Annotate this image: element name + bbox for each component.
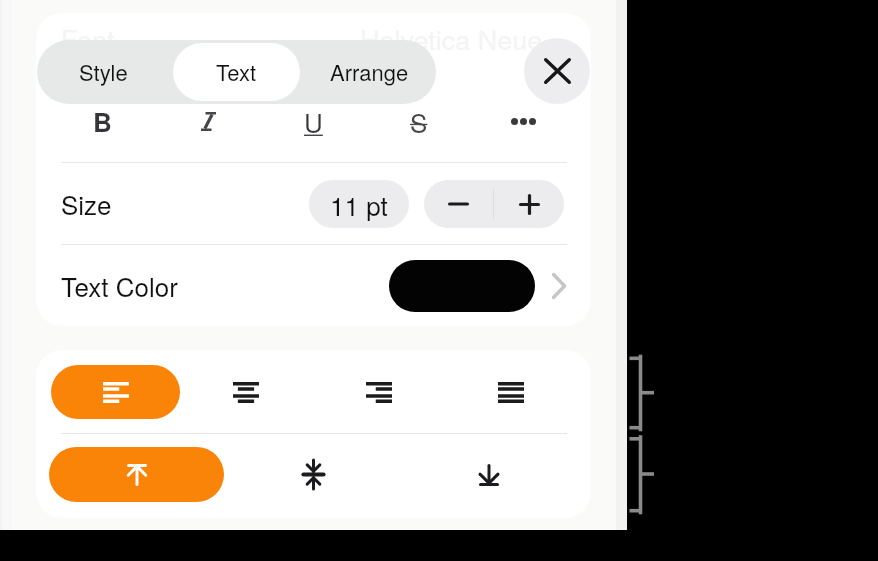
staticText: Style	[79, 56, 128, 88]
button[interactable]: Align left	[51, 365, 180, 419]
button[interactable]: Bold	[49, 92, 155, 150]
button[interactable]: Arrange	[306, 43, 433, 101]
staticText: Text Color	[61, 267, 178, 304]
button[interactable]: Align center	[201, 365, 291, 419]
button[interactable]: Justify	[466, 365, 556, 419]
staticText: Font	[61, 19, 115, 58]
button[interactable]: Close	[524, 38, 590, 104]
staticText: 11 pt	[330, 186, 388, 223]
button[interactable]: 11 pt	[309, 180, 409, 228]
button[interactable]: Increase size	[494, 180, 564, 228]
button[interactable]: Align right	[334, 365, 424, 419]
staticText: B	[93, 103, 112, 140]
staticText: Helvetica Neue	[360, 19, 543, 58]
staticText: Arrange	[330, 56, 409, 88]
button[interactable]: Text	[173, 43, 300, 101]
button[interactable]: Underline	[261, 92, 366, 150]
button[interactable]: Align middle	[263, 447, 363, 502]
button[interactable]: Align top	[49, 447, 224, 502]
staticText: Text	[216, 56, 257, 88]
button[interactable]: Strikethrough	[366, 92, 471, 150]
button[interactable]: Italic	[155, 92, 261, 150]
button[interactable]: Decrease size	[424, 180, 493, 228]
button[interactable]: Style	[40, 43, 167, 101]
button[interactable]: More	[471, 92, 576, 150]
staticText: U	[304, 103, 323, 140]
button[interactable]: Align bottom	[439, 447, 539, 502]
staticText: Size	[61, 185, 112, 222]
button[interactable]: Text Color	[36, 245, 591, 326]
staticText: S	[410, 103, 428, 140]
button[interactable]: Size	[36, 163, 591, 244]
